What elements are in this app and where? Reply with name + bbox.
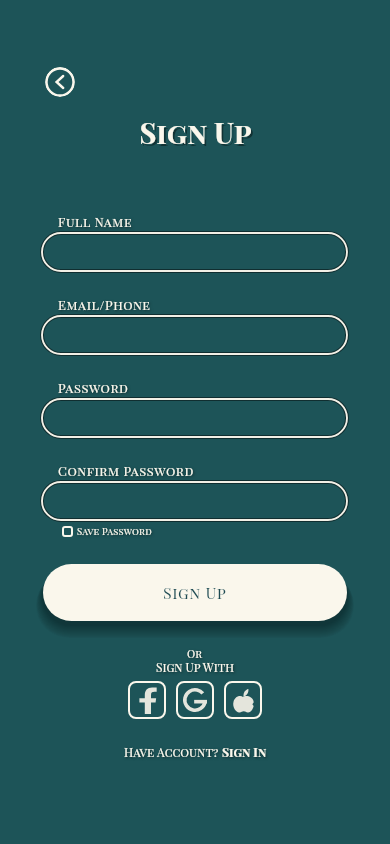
staticText: Or xyxy=(187,646,203,661)
button[interactable] xyxy=(42,399,347,437)
staticText: Sign Up xyxy=(139,113,252,152)
button[interactable] xyxy=(42,482,347,520)
button[interactable] xyxy=(42,316,347,354)
staticText: Have Account? xyxy=(124,744,222,760)
staticText: Email/Phone xyxy=(58,296,151,313)
button[interactable]: Have Account? xyxy=(124,744,267,760)
button[interactable] xyxy=(42,233,347,271)
staticText: Sign In xyxy=(222,744,267,760)
button[interactable]: Sign Up xyxy=(43,564,347,621)
staticText: Sign Up xyxy=(141,115,254,154)
staticText: Sign Up xyxy=(163,582,227,603)
staticText: Sign Up With xyxy=(156,659,235,675)
button[interactable]: Sign up with Facebook xyxy=(128,681,166,719)
staticText: Confirm Password xyxy=(58,462,194,479)
staticText: Password xyxy=(58,379,129,396)
button[interactable]: Back xyxy=(45,67,75,97)
staticText: Full Name xyxy=(58,213,133,230)
staticText: Save Password xyxy=(77,525,152,538)
button[interactable]: Save Password xyxy=(62,525,152,538)
button[interactable]: Sign up with Google xyxy=(176,681,214,719)
button[interactable]: Sign up with Apple xyxy=(224,681,262,719)
